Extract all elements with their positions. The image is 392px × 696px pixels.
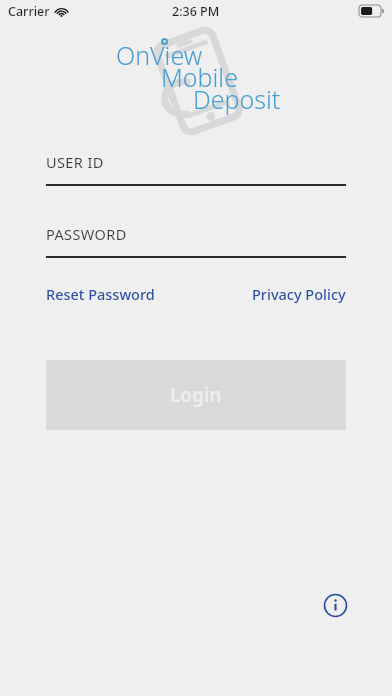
button[interactable]: Information — [320, 590, 350, 620]
staticText: USER ID — [46, 152, 104, 172]
staticText: Deposit — [193, 82, 281, 116]
button[interactable]: USER ID — [46, 152, 346, 186]
staticText: Mobile — [161, 60, 238, 94]
staticText: Privacy Policy — [252, 284, 346, 304]
button[interactable]: Privacy Policy — [252, 280, 346, 308]
staticText: Login — [170, 382, 222, 408]
staticText: OnView — [116, 38, 203, 72]
staticText: Carrier — [8, 3, 50, 20]
staticText: Reset Password — [46, 284, 155, 304]
button[interactable]: Reset Password — [46, 280, 155, 308]
staticText: PASSWORD — [46, 224, 127, 244]
staticText: 2:36 PM — [172, 3, 220, 20]
button[interactable]: PASSWORD — [46, 224, 346, 258]
